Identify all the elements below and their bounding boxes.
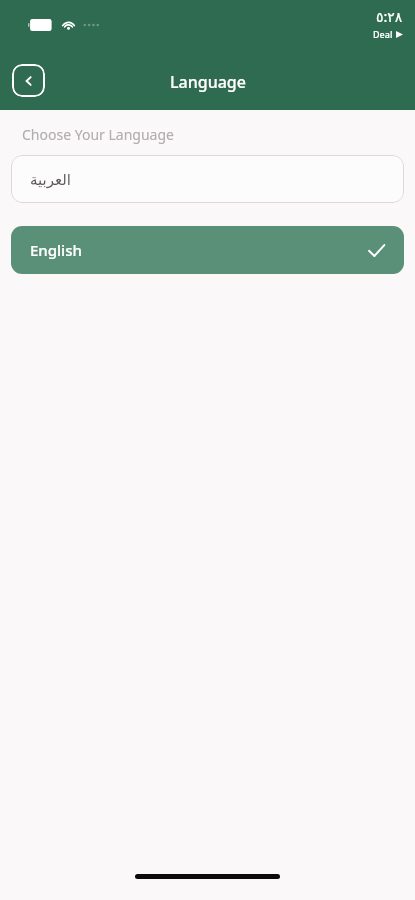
staticText: Deal (373, 28, 393, 40)
button[interactable]: Back (12, 64, 45, 97)
button[interactable]: العربية (11, 155, 404, 203)
staticText: Language (170, 71, 246, 93)
staticText: العربية (30, 171, 71, 188)
button[interactable]: English (11, 226, 404, 274)
staticText: English (30, 240, 82, 260)
staticText: Choose Your Language (22, 125, 174, 144)
staticText: ٥:٢٨ (376, 7, 403, 26)
